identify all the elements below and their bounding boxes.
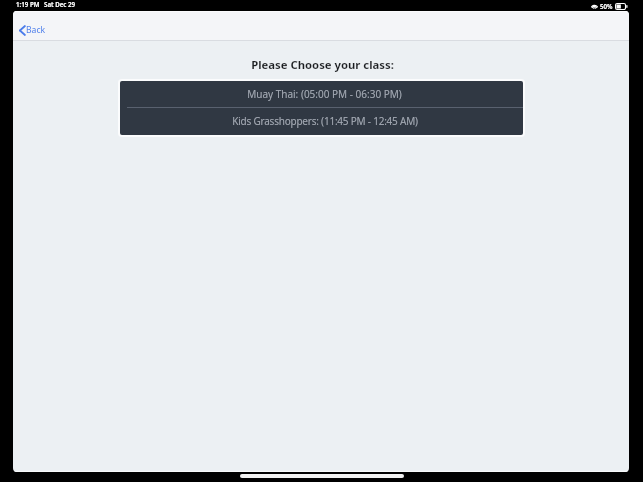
staticText: Sat Dec 29 xyxy=(44,0,76,8)
staticText: 50% xyxy=(600,2,613,10)
other: Back xyxy=(19,25,26,36)
staticText: 1:19 PM xyxy=(16,0,40,8)
staticText: Back xyxy=(26,24,46,36)
staticText: Muay Thai: (05:00 PM - 06:30 PM) xyxy=(247,87,402,101)
other: Battery 50 percent xyxy=(615,3,628,10)
button[interactable]: Muay Thai: (05:00 PM - 06:30 PM) xyxy=(120,81,523,107)
button[interactable]: Kids Grasshoppers: (11:45 PM - 12:45 AM) xyxy=(120,108,523,135)
staticText: Kids Grasshoppers: (11:45 PM - 12:45 AM) xyxy=(232,114,418,128)
other: Wi-Fi xyxy=(591,4,598,9)
button[interactable]: Back xyxy=(14,19,53,41)
staticText: Please Choose your class: xyxy=(251,57,394,72)
